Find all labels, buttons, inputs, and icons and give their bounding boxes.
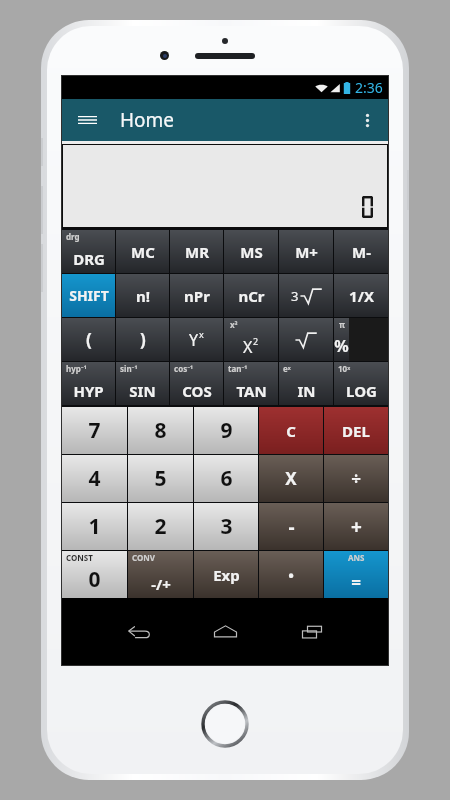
staticText: hyp⁻¹ [66, 363, 87, 374]
button[interactable]: MR [170, 230, 223, 273]
button[interactable]: 1 [62, 503, 127, 550]
staticText: X [285, 467, 297, 490]
button[interactable]: cos⁻¹ [170, 362, 223, 405]
staticText: 2 [253, 335, 259, 347]
staticText: HYP [73, 381, 104, 401]
staticText: 8 [154, 416, 167, 445]
button[interactable]: π [334, 318, 349, 361]
staticText: M- [352, 242, 371, 262]
staticText: 0 [88, 565, 101, 594]
staticText: Exp [213, 565, 240, 585]
button[interactable]: 5 [128, 455, 193, 502]
staticText: 4 [88, 464, 101, 493]
staticText: ÷ [351, 467, 361, 490]
button[interactable]: Home button [201, 700, 249, 748]
button[interactable]: • [259, 551, 323, 598]
staticText: eˣ [283, 363, 291, 374]
button[interactable]: 3 [194, 503, 258, 550]
button[interactable]: MS [224, 230, 278, 273]
button[interactable]: More options [352, 105, 382, 135]
button[interactable]: nCr [224, 274, 278, 317]
staticText: nCr [238, 286, 265, 306]
staticText: 9 [220, 416, 233, 445]
button[interactable]: n! [116, 274, 169, 317]
staticText: 3 [220, 512, 233, 541]
staticText: + [351, 514, 362, 540]
staticText: cos⁻¹ [174, 363, 194, 374]
button[interactable]: Open navigation menu [72, 105, 102, 135]
staticText: 1 [88, 512, 101, 541]
staticText: 5 [154, 464, 167, 493]
staticText: CONV [132, 552, 156, 563]
button[interactable]: Cube root [279, 274, 333, 317]
button[interactable]: tan⁻¹ [224, 362, 278, 405]
staticText: - [288, 514, 295, 540]
staticText: = [351, 571, 361, 594]
button[interactable]: X [259, 455, 323, 502]
button[interactable]: 7 [62, 407, 127, 454]
staticText: MC [131, 242, 155, 262]
staticText: tan⁻¹ [228, 363, 248, 374]
button[interactable]: Back [113, 612, 165, 652]
staticText: TAN [236, 381, 267, 401]
button[interactable]: MC [116, 230, 169, 273]
button[interactable]: CONV [128, 551, 193, 598]
button[interactable]: 9 [194, 407, 258, 454]
staticText: % [334, 335, 349, 357]
staticText: ANS [348, 552, 365, 563]
staticText: 10ˣ [338, 363, 351, 374]
staticText: 6 [220, 464, 233, 493]
staticText: COS [182, 381, 212, 401]
staticText: 2:36 [355, 78, 383, 97]
staticText: n! [136, 286, 150, 306]
staticText: C [286, 421, 296, 441]
button[interactable]: nPr [170, 274, 223, 317]
button[interactable]: eˣ [279, 362, 333, 405]
staticText: ) [140, 328, 146, 351]
button[interactable]: ÷ [324, 455, 388, 502]
button[interactable]: Exp [194, 551, 258, 598]
button[interactable]: 2 [128, 503, 193, 550]
button[interactable]: CONST [62, 551, 127, 598]
button[interactable]: x³ [224, 318, 278, 361]
staticText: nPr [184, 286, 210, 306]
staticText: -/+ [151, 574, 171, 594]
button[interactable]: ) [116, 318, 169, 361]
button[interactable]: hyp⁻¹ [62, 362, 115, 405]
button[interactable]: M- [334, 230, 388, 273]
button[interactable]: 1/X [334, 274, 388, 317]
staticText: sin⁻¹ [120, 363, 138, 374]
button[interactable]: 8 [128, 407, 193, 454]
button[interactable]: Home [199, 612, 251, 652]
button[interactable]: Y [170, 318, 223, 361]
button[interactable]: DEL [324, 407, 388, 454]
button[interactable]: + [324, 503, 388, 550]
staticText: CONST [66, 552, 93, 563]
button[interactable]: 10ˣ [334, 362, 388, 405]
staticText: ( [86, 328, 92, 351]
staticText: X [243, 336, 253, 358]
staticText: 3 [291, 287, 299, 305]
staticText: drg [66, 231, 80, 242]
staticText: π [339, 319, 345, 330]
staticText: x³ [230, 319, 238, 330]
staticText: DEL [342, 421, 370, 441]
staticText: LOG [346, 381, 377, 401]
button[interactable]: 6 [194, 455, 258, 502]
button[interactable]: drg [62, 230, 115, 273]
button[interactable]: Square root [279, 318, 333, 361]
button[interactable]: Recent apps [286, 612, 338, 652]
button[interactable]: C [259, 407, 323, 454]
button[interactable]: - [259, 503, 323, 550]
button[interactable]: 4 [62, 455, 127, 502]
staticText: IN [297, 381, 316, 401]
staticText: DRG [73, 249, 105, 269]
staticText: • [288, 565, 294, 585]
button[interactable]: ANS [324, 551, 388, 598]
button[interactable]: ( [62, 318, 115, 361]
button[interactable]: SHIFT [62, 274, 115, 317]
staticText: 7 [88, 416, 101, 445]
staticText: Y [189, 329, 199, 351]
button[interactable]: sin⁻¹ [116, 362, 169, 405]
button[interactable]: M+ [279, 230, 333, 273]
